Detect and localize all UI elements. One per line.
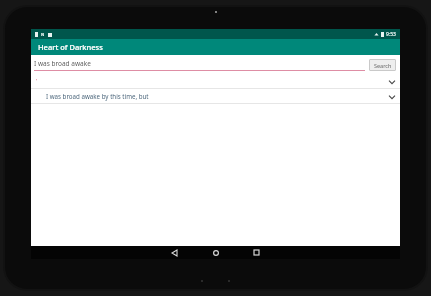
staticText: 9:53: [386, 31, 396, 38]
button[interactable]: Home: [210, 247, 221, 258]
staticText: Search: [374, 62, 392, 69]
button[interactable]: Expand result: [387, 77, 396, 86]
button[interactable]: ’: [31, 74, 400, 88]
staticText: I was broad awake by this time, but: [46, 92, 149, 100]
button[interactable]: Heart of Darkness: [31, 39, 400, 55]
button[interactable]: Expand result: [387, 92, 396, 101]
button[interactable]: Back: [169, 247, 180, 258]
button[interactable]: I was broad awake: [34, 59, 365, 71]
button[interactable]: I was broad awake by this time, but: [31, 89, 400, 103]
button[interactable]: Recent apps: [251, 247, 262, 258]
staticText: Heart of Darkness: [38, 42, 103, 52]
button[interactable]: Search: [369, 59, 396, 71]
staticText: N: [41, 32, 45, 37]
staticText: I was broad awake: [34, 59, 91, 68]
staticText: ’: [36, 77, 38, 85]
